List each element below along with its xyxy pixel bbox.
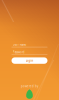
staticText: Password — [13, 50, 25, 54]
button[interactable]: Login — [11, 57, 47, 64]
staticText: User Name — [13, 43, 27, 46]
staticText: powered by — [21, 84, 38, 88]
staticText: Login — [25, 59, 33, 62]
